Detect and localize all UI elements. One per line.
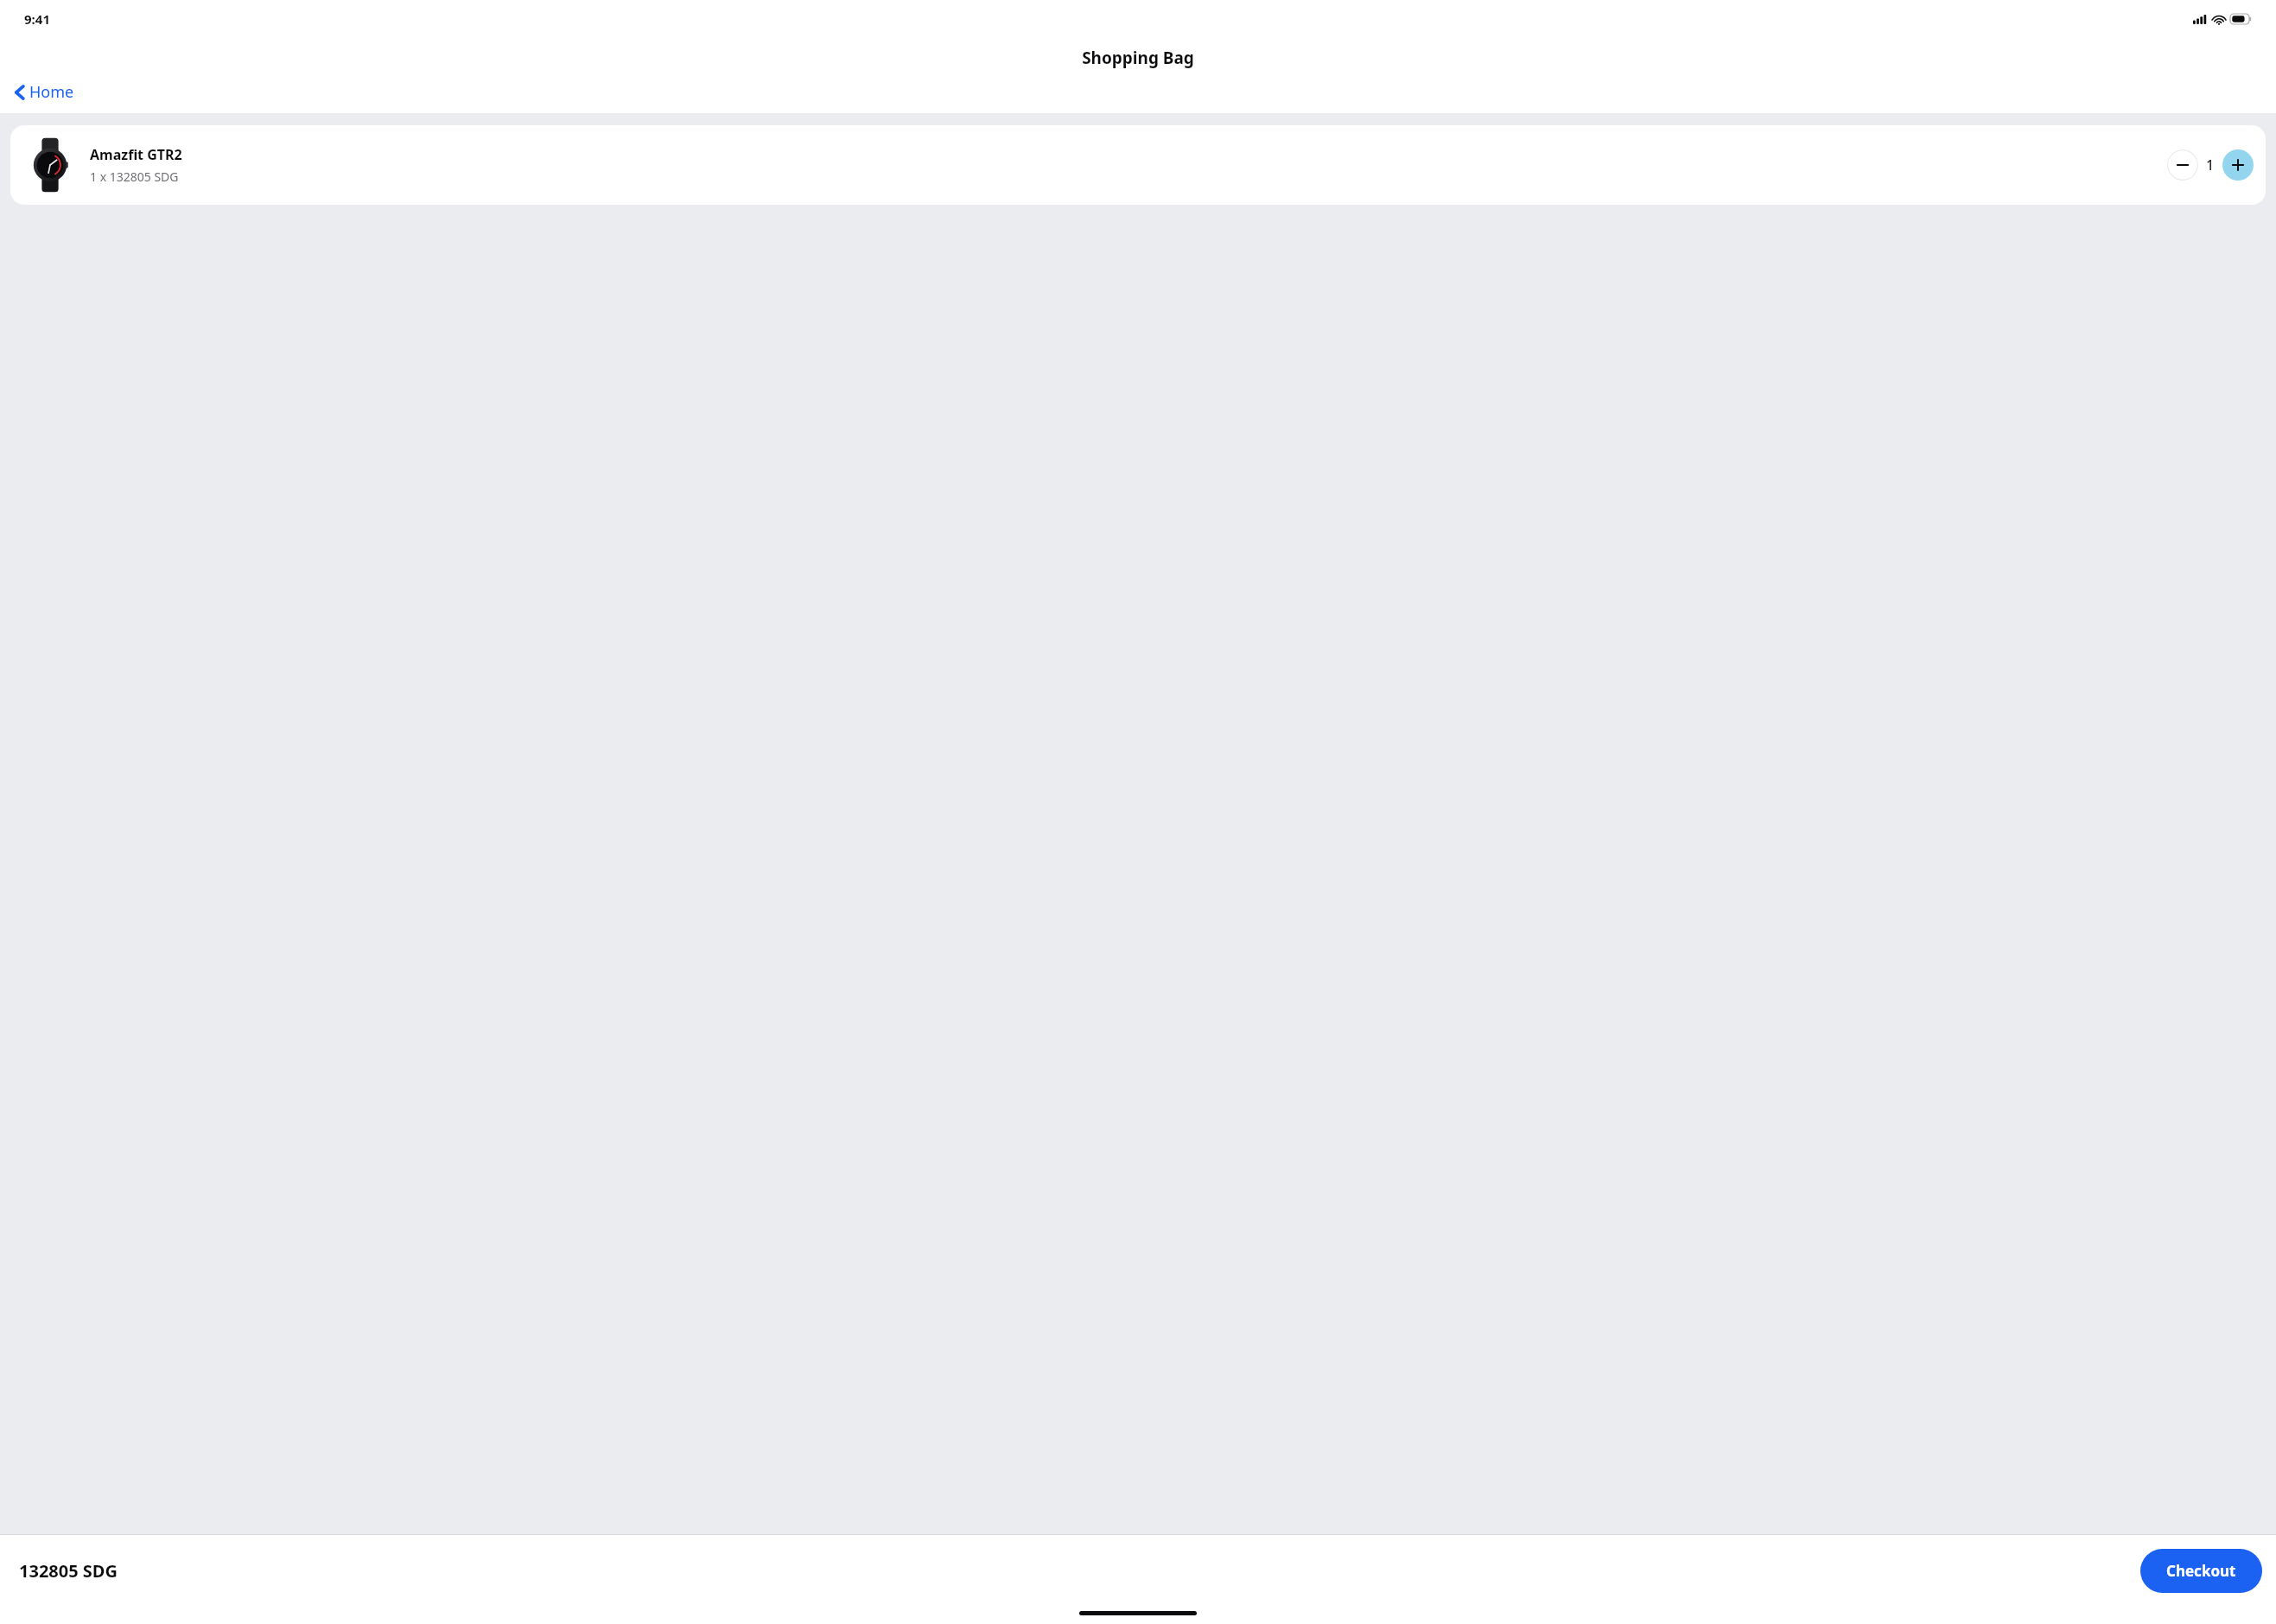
staticText: Shopping Bag [1082,47,1194,69]
staticText: Checkout [2166,1561,2236,1581]
staticText: 1 x 132805 SDG [90,168,179,185]
button[interactable]: Decrease quantity [2167,149,2198,181]
staticText: Home [29,81,74,103]
button[interactable]: Amazfit GTR2 [10,125,2266,205]
button[interactable]: Checkout [2140,1549,2262,1593]
button[interactable]: Increase quantity [2222,149,2254,181]
staticText: 1 [2206,155,2215,174]
staticText: 132805 SDG [19,1559,118,1583]
staticText: Amazfit GTR2 [90,145,182,164]
staticText: 9:41 [24,10,50,28]
button[interactable]: Home [9,78,86,113]
